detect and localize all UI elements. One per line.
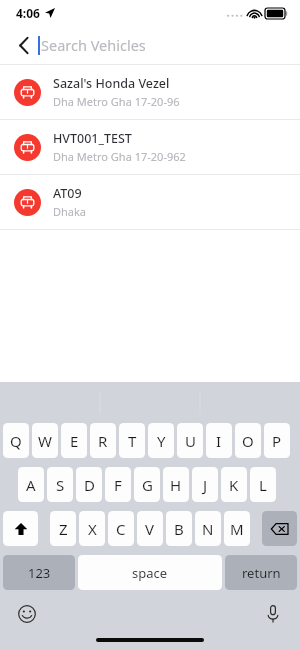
staticText: E	[70, 431, 79, 451]
staticText: A	[26, 475, 36, 495]
staticText: H	[170, 475, 182, 495]
staticText: G	[142, 475, 153, 495]
button[interactable]: X	[79, 511, 105, 546]
button[interactable]: Q	[3, 423, 29, 458]
staticText: Q	[10, 431, 22, 451]
staticText: I	[216, 431, 222, 451]
staticText: U	[185, 431, 196, 451]
button[interactable]: P	[264, 423, 290, 458]
button[interactable]: V	[137, 511, 163, 546]
button[interactable]: Dictate	[262, 603, 284, 625]
button[interactable]: Z	[50, 511, 76, 546]
button[interactable]: return	[225, 555, 297, 590]
staticText: Dha Metro Gha 17-20-962	[53, 149, 186, 164]
staticText: V	[145, 519, 155, 539]
button[interactable]: space	[78, 555, 222, 590]
button[interactable]: L	[250, 467, 276, 502]
staticText: M	[230, 519, 244, 539]
staticText: K	[229, 475, 239, 495]
button[interactable]: U	[177, 423, 203, 458]
staticText: N	[202, 519, 214, 539]
staticText: W	[38, 431, 52, 451]
button[interactable]: B	[166, 511, 192, 546]
button[interactable]: R	[90, 423, 116, 458]
staticText: C	[116, 519, 126, 539]
staticText: B	[174, 519, 184, 539]
staticText: 123	[28, 564, 51, 582]
button[interactable]: S	[47, 467, 73, 502]
button[interactable]: Sazal's Honda Vezel	[0, 65, 300, 119]
staticText: Z	[59, 519, 68, 539]
staticText: R	[98, 431, 108, 451]
button[interactable]: E	[61, 423, 87, 458]
staticText: 4:06	[16, 5, 40, 21]
button[interactable]: J	[192, 467, 218, 502]
staticText: Dha Metro Gha 17-20-96	[53, 94, 180, 109]
button[interactable]: N	[195, 511, 221, 546]
button[interactable]: G	[134, 467, 160, 502]
button[interactable]: A	[18, 467, 44, 502]
staticText: space	[132, 564, 168, 582]
staticText: Y	[157, 431, 166, 451]
button[interactable]: Y	[148, 423, 174, 458]
button[interactable]: I	[206, 423, 232, 458]
staticText: HVT001_TEST	[53, 130, 132, 147]
staticText: T	[128, 431, 137, 451]
staticText: Search Vehicles	[41, 35, 146, 55]
staticText: O	[242, 431, 254, 451]
staticText: Sazal's Honda Vezel	[53, 75, 170, 92]
button[interactable]: D	[76, 467, 102, 502]
button[interactable]: Emoji	[16, 603, 38, 625]
button[interactable]: Shift	[3, 511, 38, 546]
staticText: Dhaka	[53, 204, 87, 219]
button[interactable]: F	[105, 467, 131, 502]
button[interactable]: O	[235, 423, 261, 458]
staticText: D	[84, 475, 95, 495]
button[interactable]: HVT001_TEST	[0, 120, 300, 174]
button[interactable]: H	[163, 467, 189, 502]
staticText: AT09	[53, 185, 82, 202]
button[interactable]: Delete	[262, 511, 297, 546]
button[interactable]: 123	[3, 555, 75, 590]
staticText: P	[272, 431, 282, 451]
staticText: F	[114, 475, 122, 495]
staticText: J	[203, 475, 208, 495]
button[interactable]: K	[221, 467, 247, 502]
staticText: X	[88, 519, 97, 539]
staticText: return	[242, 564, 281, 582]
button[interactable]: AT09	[0, 175, 300, 229]
button[interactable]: C	[108, 511, 134, 546]
staticText: S	[56, 475, 65, 495]
button[interactable]: W	[32, 423, 58, 458]
button[interactable]: M	[224, 511, 250, 546]
button[interactable]: Back	[12, 33, 36, 57]
button[interactable]: T	[119, 423, 145, 458]
staticText: L	[259, 475, 267, 495]
